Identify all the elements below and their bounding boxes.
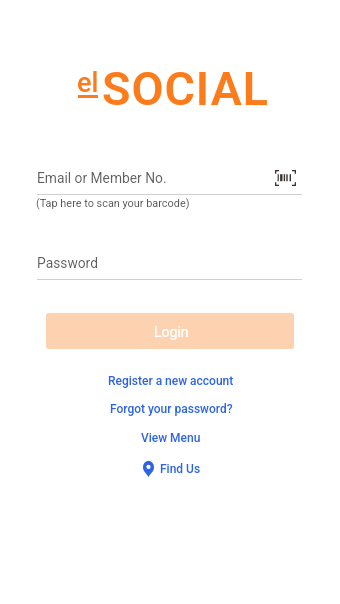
staticText: Email or Member No.	[37, 170, 167, 186]
staticText: View Menu	[141, 431, 201, 445]
button[interactable]: Forgot your password?	[1, 402, 340, 416]
button[interactable]: Login	[46, 313, 294, 349]
staticText: Register a new account	[108, 374, 234, 388]
button[interactable]: View Menu	[1, 431, 340, 445]
staticText: Password	[37, 255, 98, 271]
staticText: Forgot your password?	[110, 402, 233, 416]
staticText: Login	[154, 324, 189, 340]
staticText: el	[77, 67, 99, 99]
button[interactable]: Register a new account	[1, 374, 340, 388]
button[interactable]: Scan barcode	[270, 165, 301, 191]
button[interactable]: Find Us	[2, 461, 340, 477]
staticText: Find Us	[160, 462, 201, 476]
staticText: SOCIAL	[102, 62, 269, 116]
staticText: (Tap here to scan your barcode)	[36, 197, 190, 210]
